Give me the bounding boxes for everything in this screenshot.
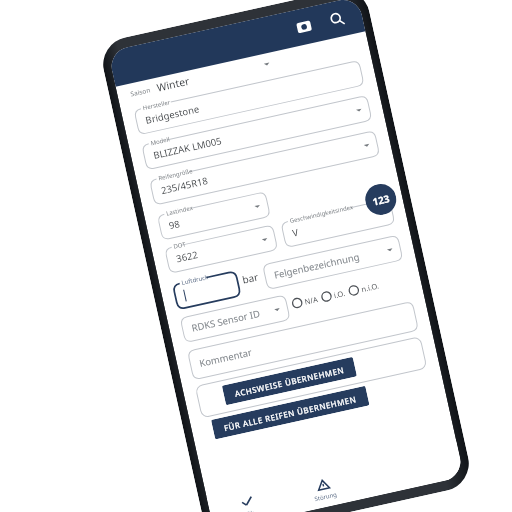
staticText: N/A	[304, 294, 319, 307]
button[interactable]: ACHSWEISE ÜBERNEHMEN	[222, 357, 357, 405]
button[interactable]: Kamera	[291, 13, 317, 40]
button[interactable]: Saison	[129, 56, 271, 100]
staticText: 123	[371, 191, 392, 209]
staticText: bar	[241, 269, 260, 287]
button[interactable]: Geschwindigkeitsindex	[280, 194, 395, 247]
staticText: ACHSWEISE ÜBERNEHMEN	[234, 364, 345, 399]
button[interactable]: Suche	[324, 6, 350, 32]
button[interactable]: DOT	[164, 220, 278, 273]
staticText: Störung	[314, 490, 338, 503]
staticText: Felgenbezeichnung	[273, 250, 361, 282]
staticText: Ok	[245, 509, 255, 512]
staticText: 235/45R18	[160, 174, 209, 197]
staticText: 98	[168, 217, 181, 232]
staticText: Lastindex	[165, 204, 193, 218]
staticText: Kommentar	[198, 345, 254, 370]
staticText: RDKS Sensor ID	[190, 307, 261, 335]
staticText: n.i.O.	[360, 280, 380, 294]
staticText: Bridgestone	[144, 102, 201, 127]
staticText: 3622	[175, 248, 199, 265]
button[interactable]: Ok	[208, 487, 288, 512]
button[interactable]: Störung	[283, 470, 364, 509]
staticText: DOT	[173, 240, 187, 251]
staticText: Winter	[155, 74, 191, 95]
button[interactable]: i.O.	[320, 287, 347, 303]
staticText: Modell	[150, 135, 171, 147]
button[interactable]: Kommentar	[186, 297, 418, 380]
button[interactable]: Lastindex	[156, 187, 270, 240]
staticText: i.O.	[333, 288, 347, 300]
staticText: Hersteller	[142, 98, 171, 112]
button[interactable]: Felgenbezeichnung	[262, 230, 403, 289]
button[interactable]: N/A	[291, 293, 319, 310]
button[interactable]: Reifengröße	[149, 126, 380, 205]
button[interactable]: RDKS Sensor ID	[179, 290, 290, 342]
button[interactable]: Luftdruck	[172, 266, 241, 309]
button[interactable]: FÜR ALLE REIFEN ÜBERNEHMEN	[211, 386, 370, 439]
staticText: BLIZZAK LM005	[152, 134, 223, 162]
staticText: Geschwindigkeitsindex	[289, 203, 354, 225]
staticText: Saison	[130, 85, 151, 98]
button[interactable]: Modell	[141, 91, 372, 170]
staticText: Reifengröße	[158, 167, 193, 182]
staticText: V	[291, 226, 300, 240]
staticText: FÜR ALLE REIFEN ÜBERNEHMEN	[223, 393, 358, 433]
button[interactable]: Hersteller	[133, 56, 364, 135]
staticText: Luftdruck	[181, 273, 210, 287]
button[interactable]: n.i.O.	[347, 280, 380, 297]
button[interactable]: 123	[362, 181, 399, 218]
